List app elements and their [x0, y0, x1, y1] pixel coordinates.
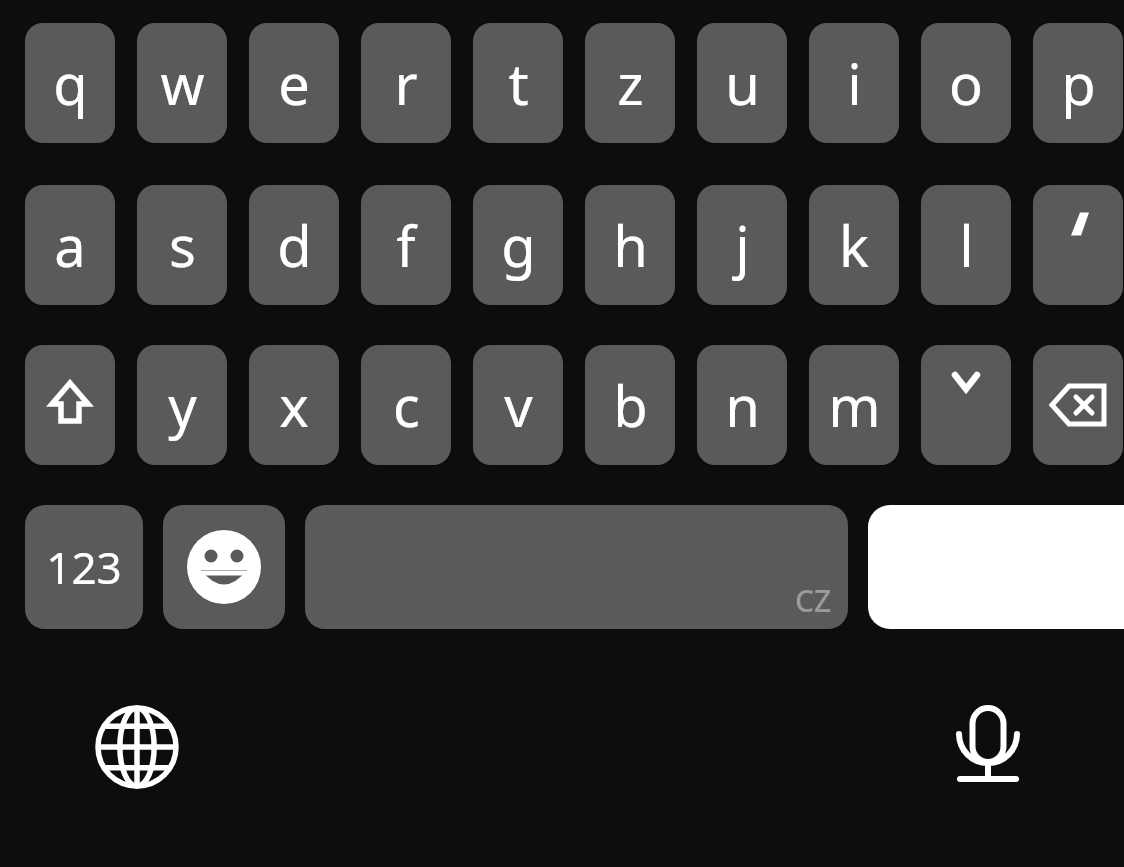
button[interactable]: m [809, 345, 899, 465]
staticText: a [54, 207, 86, 283]
staticText: s [169, 207, 196, 283]
button[interactable]: Backspace [1033, 345, 1123, 465]
button[interactable]: w [137, 23, 227, 143]
staticText: b [613, 367, 648, 443]
staticText: p [1061, 45, 1096, 121]
button[interactable]: v [473, 345, 563, 465]
button[interactable]: Shift [25, 345, 115, 465]
staticText: z [617, 45, 644, 121]
button[interactable]: p [1033, 23, 1123, 143]
staticText: x [279, 367, 309, 443]
staticText: q [53, 45, 88, 121]
button[interactable]: Voice input [938, 697, 1038, 797]
button[interactable]: c [361, 345, 451, 465]
staticText: y [168, 367, 197, 443]
button[interactable]: s [137, 185, 227, 305]
button[interactable]: h [585, 185, 675, 305]
button[interactable]: t [473, 23, 563, 143]
staticText: j [735, 207, 750, 283]
button[interactable]: l [921, 185, 1011, 305]
button[interactable]: Emoji [163, 505, 285, 629]
button[interactable]: Acute accent [1033, 185, 1123, 305]
button[interactable]: k [809, 185, 899, 305]
button[interactable]: q [25, 23, 115, 143]
button[interactable]: i [809, 23, 899, 143]
button[interactable]: y [137, 345, 227, 465]
staticText: f [396, 207, 416, 283]
button[interactable]: j [697, 185, 787, 305]
staticText: c [393, 367, 420, 443]
button[interactable]: 123 [25, 505, 143, 629]
button[interactable]: e [249, 23, 339, 143]
button[interactable]: o [921, 23, 1011, 143]
staticText: o [949, 45, 983, 121]
button[interactable]: f [361, 185, 451, 305]
button[interactable]: g [473, 185, 563, 305]
button[interactable]: z [585, 23, 675, 143]
button[interactable]: n [697, 345, 787, 465]
staticText: h [613, 207, 648, 283]
button[interactable]: x [249, 345, 339, 465]
button[interactable]: Enter [868, 505, 1124, 629]
staticText: u [725, 45, 760, 121]
button[interactable]: d [249, 185, 339, 305]
staticText: d [277, 207, 312, 283]
staticText: v [504, 367, 533, 443]
button[interactable]: Caron [921, 345, 1011, 465]
staticText: w [160, 45, 205, 121]
staticText: i [847, 45, 862, 121]
button[interactable]: a [25, 185, 115, 305]
staticText: k [839, 207, 869, 283]
staticText: 123 [46, 537, 122, 597]
staticText: l [959, 207, 974, 283]
staticText: t [508, 45, 529, 121]
button[interactable]: Space [305, 505, 848, 629]
staticText: g [501, 207, 536, 283]
staticText: m [828, 367, 881, 443]
staticText: e [278, 45, 310, 121]
staticText: n [725, 367, 760, 443]
staticText: CZ [795, 580, 832, 621]
button[interactable]: r [361, 23, 451, 143]
button[interactable]: Change language [87, 697, 187, 797]
button[interactable]: b [585, 345, 675, 465]
button[interactable]: u [697, 23, 787, 143]
staticText: r [394, 45, 418, 121]
